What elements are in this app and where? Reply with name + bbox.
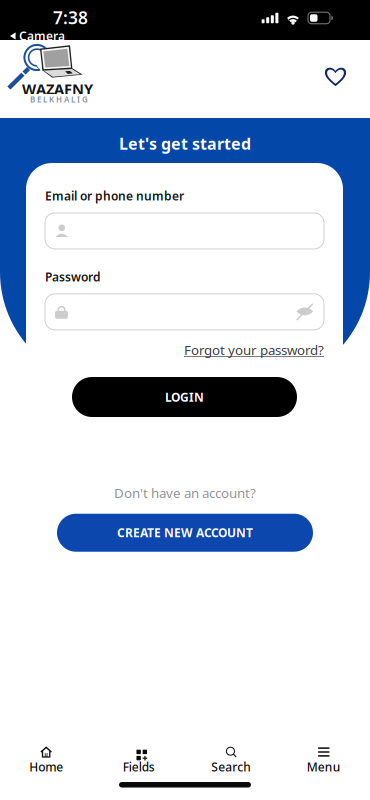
staticText: Email or phone number	[45, 188, 184, 204]
staticText: Home	[29, 759, 63, 775]
button[interactable]: Menu	[277, 746, 370, 775]
staticText: Menu	[307, 759, 341, 775]
button[interactable]: Fields	[92, 746, 185, 775]
staticText: WAZAFNY	[22, 79, 93, 98]
button[interactable]: LOGIN	[72, 377, 297, 417]
staticText: 7:38	[53, 6, 88, 29]
staticText: Forgot your password?	[184, 341, 324, 359]
button[interactable]: Search	[185, 746, 277, 775]
button[interactable]: CREATE NEW ACCOUNT	[57, 514, 313, 552]
staticText: CREATE NEW ACCOUNT	[117, 525, 253, 541]
staticText: B E L K H A L I G	[30, 94, 88, 105]
staticText: Fields	[123, 759, 155, 775]
staticText: Password	[45, 269, 101, 285]
button[interactable]: Forgot your password?	[184, 330, 324, 361]
staticText: Search	[211, 759, 251, 775]
staticText: Let's get started	[119, 133, 251, 154]
staticText: Camera	[19, 28, 65, 44]
button[interactable]: Home	[0, 746, 92, 775]
button[interactable]: Favorites	[314, 55, 357, 97]
staticText: Don't have an account?	[114, 484, 256, 502]
staticText: LOGIN	[165, 389, 204, 405]
